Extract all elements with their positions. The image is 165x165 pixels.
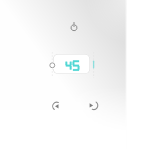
button[interactable]: Maximum handle — [89, 50, 98, 80]
button[interactable]: Next — [88, 100, 98, 111]
button[interactable]: Previous — [52, 101, 62, 112]
button[interactable] — [53, 54, 90, 74]
button[interactable]: Minimum handle — [46, 48, 59, 82]
button[interactable]: Power — [69, 21, 80, 32]
